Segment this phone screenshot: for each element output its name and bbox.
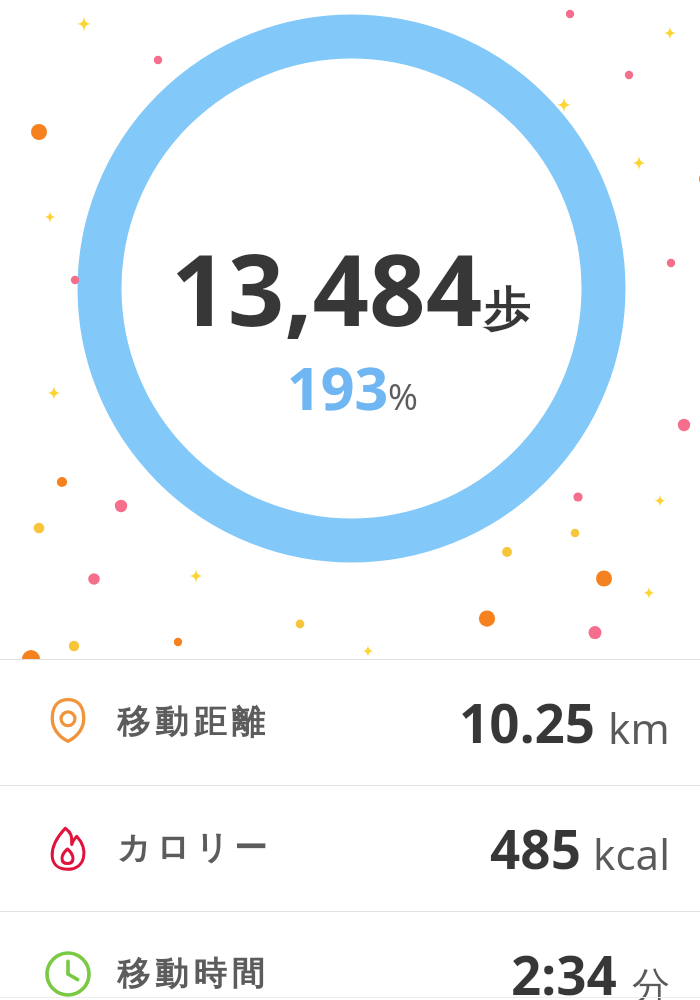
staticText: 13,484 — [171, 220, 483, 355]
other: Duration — [43, 949, 93, 999]
staticText: 移動距離 — [117, 701, 270, 743]
button[interactable]: Distance — [0, 659, 700, 785]
staticText: 485 — [490, 812, 581, 884]
staticText: 分 — [632, 962, 670, 1000]
staticText: カロリー — [117, 827, 273, 869]
other: Calories — [43, 823, 93, 873]
staticText: 歩 — [484, 281, 530, 339]
staticText: km — [608, 699, 670, 756]
staticText: kcal — [593, 825, 670, 882]
staticText: 移動時間 — [117, 953, 270, 995]
button[interactable]: Daily step progress — [77, 14, 626, 563]
other: Distance — [43, 697, 93, 747]
staticText: 193 — [287, 347, 389, 427]
button[interactable]: Calories — [0, 785, 700, 911]
staticText: 10.25 — [459, 686, 596, 758]
staticText: % — [388, 372, 418, 421]
staticText: 2:34 — [511, 938, 617, 1000]
button[interactable]: Duration — [0, 911, 700, 1000]
